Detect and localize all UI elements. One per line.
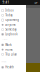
staticText: Inbox: [5, 9, 13, 12]
button[interactable]: Trip plan: [0, 52, 26, 57]
staticText: Work: [5, 43, 11, 47]
staticText: Logbook: [5, 33, 17, 36]
staticText: Someday: [5, 28, 16, 31]
staticText: Projects: [2, 38, 8, 40]
button[interactable]: Inbox: [0, 8, 26, 13]
staticText: Trip plan: [5, 53, 17, 56]
button[interactable]: Logbook: [0, 32, 26, 37]
staticText: ▃▃ ▮: [35, 2, 38, 3]
staticText: Areas: [2, 61, 7, 63]
staticText: Home: [5, 48, 13, 51]
button[interactable]: Someday: [0, 27, 26, 32]
staticText: Today: [5, 14, 12, 17]
staticText: Upcoming: [5, 18, 19, 22]
button[interactable]: Anytime: [0, 22, 26, 27]
button[interactable]: Health: [0, 65, 26, 70]
button[interactable]: Today: [0, 13, 26, 18]
staticText: Anytime: [5, 23, 16, 27]
button[interactable]: Work: [0, 42, 26, 47]
staticText: Health: [5, 66, 14, 69]
button[interactable]: Upcoming: [0, 18, 26, 22]
button[interactable]: Home: [0, 47, 26, 52]
staticText: 9:41: [3, 1, 10, 4]
